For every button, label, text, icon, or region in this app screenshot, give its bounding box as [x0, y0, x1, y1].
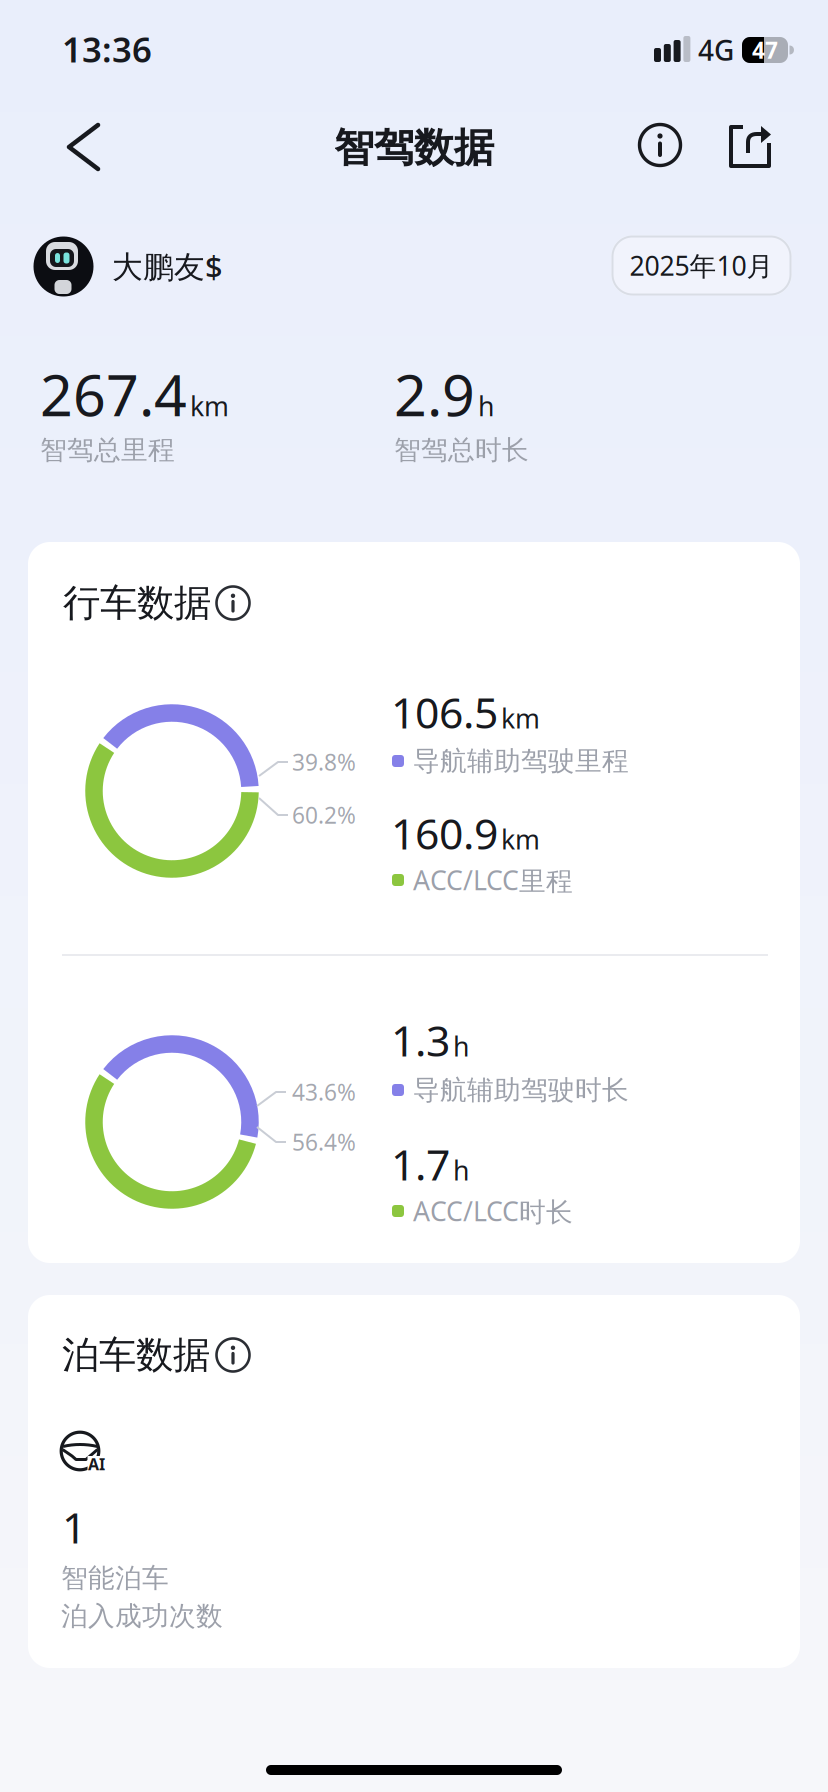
staticText: 47	[752, 35, 778, 65]
button[interactable]: Info	[632, 117, 688, 173]
staticText: 智驾总时长	[394, 434, 529, 466]
staticText: 行车数据	[63, 580, 211, 626]
staticText: 13:36	[62, 26, 152, 72]
staticText: km	[501, 700, 540, 736]
staticText: km	[190, 388, 229, 424]
staticText: 60.2%	[292, 800, 356, 830]
staticText: 智驾数据	[334, 123, 494, 172]
staticText: km	[501, 821, 540, 857]
staticText: ACC/LCC里程	[413, 862, 573, 898]
button[interactable]: Share	[719, 116, 779, 176]
staticText: 56.4%	[292, 1127, 356, 1157]
staticText: h	[478, 388, 494, 424]
staticText: 泊入成功次数	[61, 1600, 223, 1632]
button[interactable]: Back	[53, 117, 113, 177]
staticText: 160.9	[391, 805, 498, 861]
staticText: h	[453, 1152, 469, 1188]
staticText: AI	[88, 1453, 105, 1475]
button[interactable]: 2025年10月	[611, 235, 791, 295]
staticText: 39.8%	[292, 747, 356, 777]
staticText: 智驾总里程	[40, 434, 175, 466]
staticText: 1.3	[391, 1012, 450, 1068]
staticText: h	[453, 1028, 469, 1064]
staticText: 导航辅助驾驶时长	[413, 1074, 629, 1106]
staticText: 导航辅助驾驶里程	[413, 745, 629, 777]
staticText: 1	[62, 1499, 86, 1555]
button[interactable]: Info	[211, 581, 255, 625]
staticText: 2025年10月	[629, 248, 773, 283]
staticText: ACC/LCC时长	[413, 1193, 573, 1229]
staticText: 2.9	[394, 356, 475, 432]
staticText: 大鹏友$	[112, 246, 223, 286]
staticText: 泊车数据	[62, 1332, 210, 1378]
staticText: 106.5	[391, 684, 498, 740]
staticText: 267.4	[40, 356, 187, 432]
staticText: 智能泊车	[61, 1562, 169, 1594]
staticText: 1.7	[391, 1136, 450, 1192]
staticText: 4G	[698, 31, 734, 69]
staticText: 43.6%	[292, 1077, 356, 1107]
button[interactable]: Info	[211, 1333, 255, 1377]
